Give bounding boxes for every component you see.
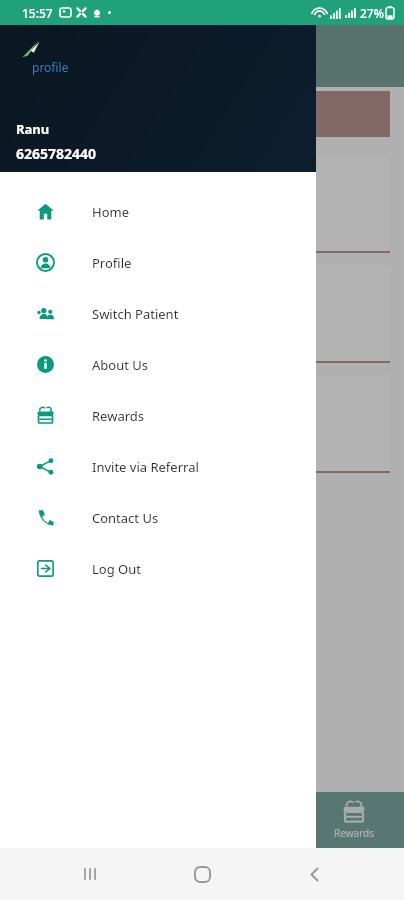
button[interactable]: Invite via Referral [0,441,316,492]
staticText: Ranu [16,120,50,138]
staticText: profile [32,59,69,75]
staticText: About Us [92,356,149,374]
button[interactable]: Home [180,852,224,896]
staticText: Switch Patient [92,305,179,323]
staticText: 27% [360,5,384,21]
staticText: Rewards [92,407,145,425]
button[interactable]: Rewards [303,792,404,848]
button[interactable]: Recent apps [68,852,112,896]
staticText: Rewards [334,826,374,840]
button[interactable]: About Us [0,339,316,390]
button[interactable]: Certificate [14,375,390,473]
staticText: Log Out [92,560,141,578]
button[interactable]: Contact Us [0,492,316,543]
button[interactable]: Invoice [14,265,390,363]
button[interactable]: Home [0,186,316,237]
staticText: 6265782440 [16,144,97,163]
button[interactable]: Back [292,852,336,896]
button[interactable]: Switch Patient [0,288,316,339]
button[interactable]: Patient List [14,155,390,253]
staticText: Home [92,203,129,221]
button[interactable]: Profile [0,237,316,288]
staticText: Contact Us [92,509,159,527]
staticText: Profile [92,254,132,272]
staticText: Invite via Referral [92,458,199,476]
button[interactable]: Rewards [0,390,316,441]
button[interactable]: Log Out [0,543,316,594]
staticText: 15:57 [22,5,53,21]
